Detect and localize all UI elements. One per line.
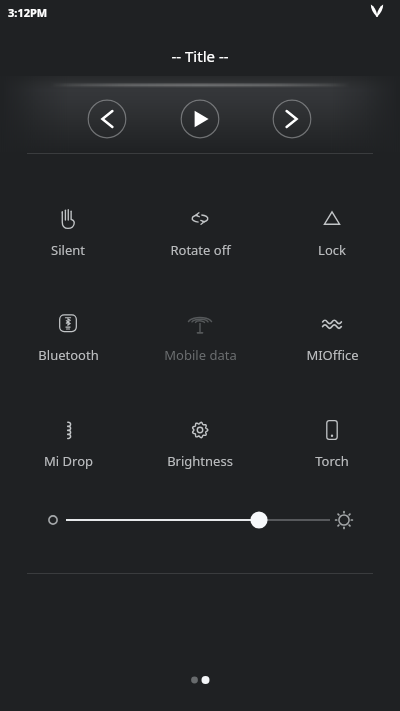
- button[interactable]: Bluetooth: [13, 294, 123, 366]
- button[interactable]: Play: [180, 99, 220, 139]
- button[interactable]: Previous: [87, 99, 127, 139]
- staticText: Mobile data: [164, 346, 237, 364]
- button[interactable]: Rotate off: [145, 188, 255, 260]
- button[interactable]: Mi Drop: [13, 400, 123, 472]
- staticText: Silent: [51, 241, 85, 259]
- staticText: Brightness: [167, 452, 233, 470]
- staticText: Torch: [315, 452, 349, 470]
- staticText: Lock: [318, 241, 346, 259]
- other: Page 2 of 2: [180, 670, 220, 690]
- button[interactable]: Torch: [277, 400, 387, 472]
- staticText: MIOffice: [306, 346, 359, 364]
- button[interactable]: Next: [272, 99, 312, 139]
- staticText: -- Title --: [171, 46, 229, 66]
- button[interactable]: Notifications: [370, 4, 384, 18]
- button[interactable]: Mobile data: [145, 294, 255, 366]
- button[interactable]: MIOffice: [277, 294, 387, 366]
- staticText: Rotate off: [170, 241, 231, 259]
- button[interactable]: Silent: [13, 188, 123, 260]
- button[interactable]: Brightness: [145, 400, 255, 472]
- staticText: Bluetooth: [38, 346, 99, 364]
- button[interactable]: Lock: [277, 188, 387, 260]
- button[interactable]: Brightness slider: [0, 498, 400, 542]
- staticText: 3:12PM: [8, 5, 48, 20]
- staticText: Mi Drop: [44, 452, 93, 470]
